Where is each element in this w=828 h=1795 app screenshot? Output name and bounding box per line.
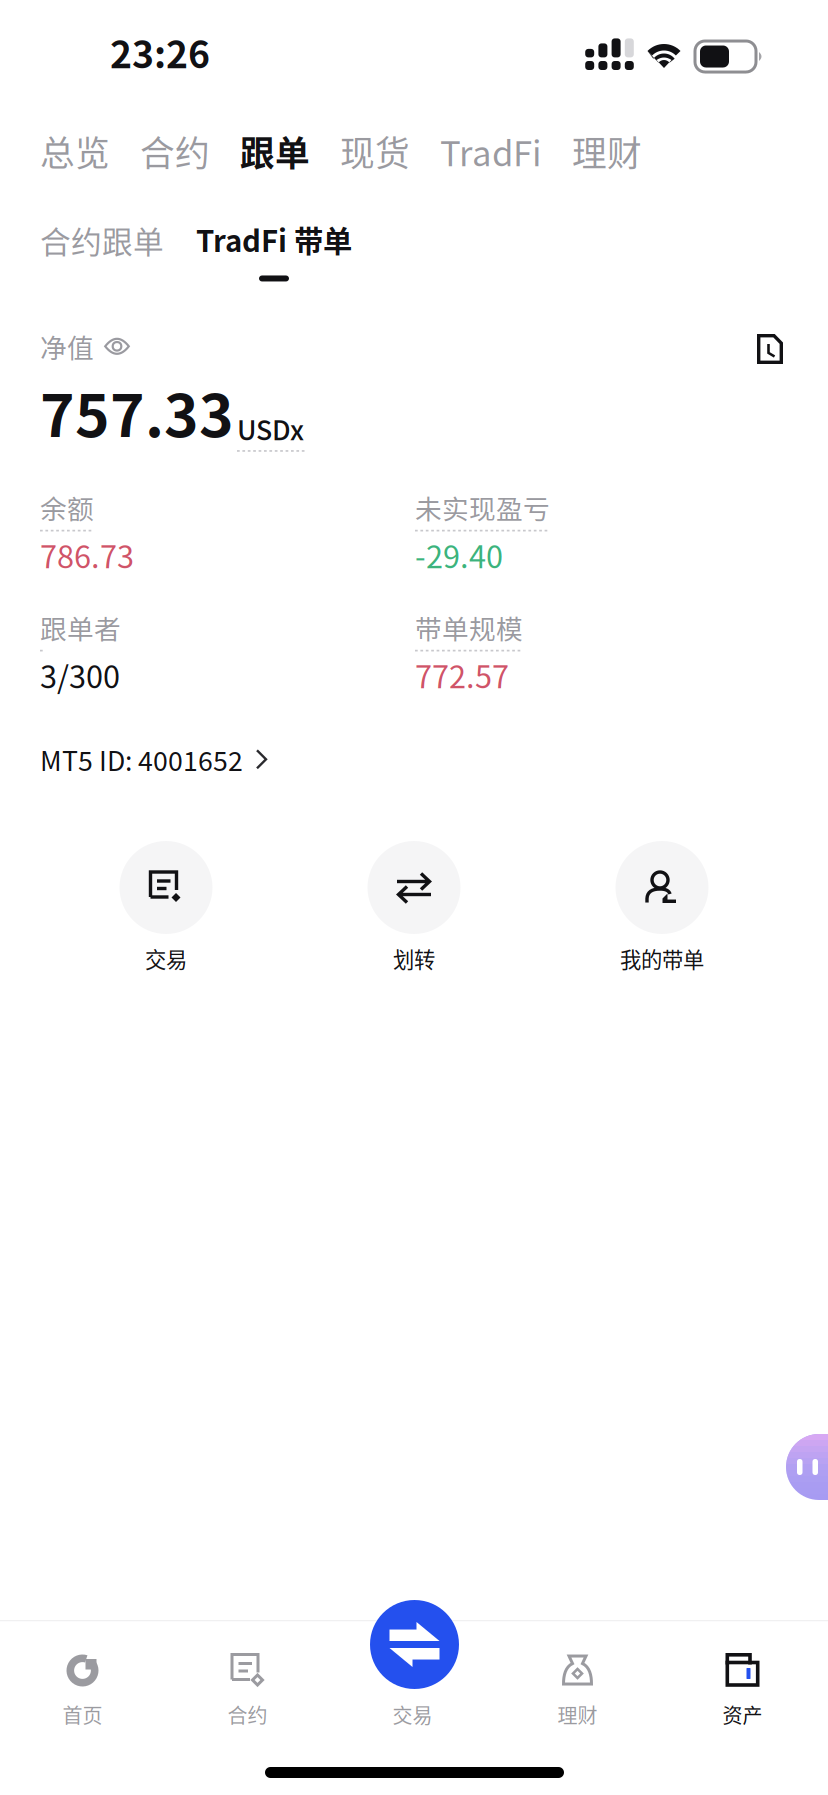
button[interactable]: 交易 <box>370 1600 459 1689</box>
staticText: 划转 <box>393 943 435 974</box>
staticText: 资产 <box>722 1700 762 1729</box>
staticText: 772.57 <box>415 653 509 697</box>
staticText: -29.40 <box>415 533 503 577</box>
staticText: 3/300 <box>40 653 120 697</box>
button[interactable]: 合约跟单 <box>40 218 164 262</box>
staticText: USDx <box>237 409 304 448</box>
staticText: TradFi 带单 <box>196 218 352 260</box>
staticText: 现货 <box>340 126 410 176</box>
button[interactable]: 交易 <box>330 1652 495 1742</box>
staticText: MT5 ID: 4001652 <box>40 740 243 779</box>
button[interactable]: TradFi 带单 <box>196 218 352 281</box>
button[interactable]: 合约 <box>165 1652 330 1742</box>
staticText: 786.73 <box>40 533 134 577</box>
button[interactable]: 合约 <box>140 126 210 176</box>
staticText: 23:26 <box>110 25 210 79</box>
staticText: 未实现盈亏 <box>415 488 550 527</box>
button[interactable]: MT5 ID: 4001652 <box>40 732 268 787</box>
staticText: 总览 <box>40 126 110 176</box>
button[interactable]: TradFi <box>440 126 542 176</box>
staticText: 首页 <box>62 1700 102 1729</box>
button[interactable]: 划转 <box>314 841 514 974</box>
staticText: 跟单者 <box>40 608 121 647</box>
staticText: TradFi <box>440 126 542 176</box>
button[interactable]: 隐藏净值 <box>104 334 130 358</box>
staticText: 理财 <box>557 1700 597 1729</box>
staticText: 我的带单 <box>620 943 704 974</box>
staticText: 合约跟单 <box>40 218 164 262</box>
staticText: 净值 <box>40 327 94 366</box>
button[interactable]: 交易 <box>66 841 266 974</box>
button[interactable]: 总览 <box>40 126 110 176</box>
staticText: 交易 <box>392 1700 432 1729</box>
staticText: 余额 <box>40 488 94 527</box>
staticText: 合约 <box>227 1700 267 1729</box>
button[interactable]: 首页 <box>0 1652 165 1742</box>
button[interactable]: 资产 <box>660 1652 825 1742</box>
button[interactable]: 历史记录 <box>757 334 783 364</box>
button[interactable]: 跟单 <box>240 126 310 176</box>
staticText: 带单规模 <box>415 608 523 647</box>
staticText: 交易 <box>145 943 187 974</box>
staticText: 757.33 <box>40 369 234 454</box>
staticText: 跟单 <box>240 126 310 176</box>
button[interactable]: 我的带单 <box>562 841 762 974</box>
staticText: 理财 <box>572 126 642 176</box>
button[interactable]: 客服助手 <box>786 1434 828 1500</box>
staticText: 合约 <box>140 126 210 176</box>
button[interactable]: 现货 <box>340 126 410 176</box>
button[interactable]: 理财 <box>572 126 642 176</box>
button[interactable]: 理财 <box>495 1652 660 1742</box>
